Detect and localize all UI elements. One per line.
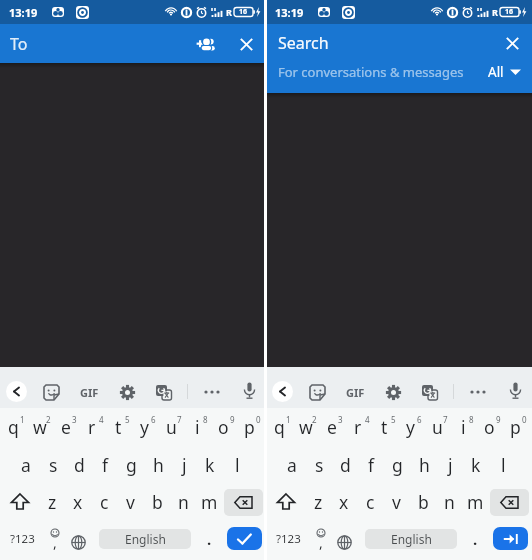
button[interactable]: z — [39, 485, 65, 519]
button[interactable]: c — [91, 485, 117, 519]
button[interactable] — [152, 381, 174, 403]
staticText: ?123 — [276, 531, 301, 547]
button[interactable] — [68, 532, 89, 553]
button[interactable] — [272, 381, 293, 402]
button[interactable]: v — [383, 485, 409, 519]
button[interactable]: b — [144, 485, 170, 519]
button[interactable]: n — [170, 485, 196, 519]
button[interactable]: f — [358, 448, 384, 482]
button[interactable]: x — [65, 485, 91, 519]
button[interactable] — [224, 489, 263, 516]
button[interactable]: To — [10, 33, 28, 55]
button[interactable]: l — [224, 448, 250, 482]
button[interactable] — [40, 381, 62, 403]
button[interactable] — [382, 381, 404, 403]
button[interactable]: d — [332, 448, 358, 482]
button[interactable] — [334, 532, 355, 553]
button[interactable]: English — [365, 529, 457, 549]
button[interactable]: e — [53, 410, 79, 444]
staticText: j — [182, 453, 187, 477]
button[interactable]: GIF — [342, 381, 368, 403]
button[interactable]: , — [44, 527, 64, 553]
button[interactable]: d — [66, 448, 92, 482]
staticText: o — [218, 415, 229, 439]
button[interactable] — [238, 380, 260, 402]
button[interactable]: m — [462, 485, 488, 519]
button[interactable]: ?123 — [272, 527, 304, 551]
button[interactable]: a — [13, 448, 39, 482]
button[interactable]: p — [236, 410, 262, 444]
button[interactable]: GIF — [76, 381, 102, 403]
button[interactable]: s — [306, 448, 332, 482]
staticText: f — [102, 453, 109, 477]
button[interactable] — [306, 381, 328, 403]
button[interactable]: t — [371, 410, 397, 444]
button[interactable]: i — [450, 410, 476, 444]
button[interactable]: r — [79, 410, 105, 444]
staticText: l — [501, 453, 506, 477]
button[interactable]: f — [92, 448, 118, 482]
button[interactable]: l — [490, 448, 516, 482]
button[interactable]: y — [131, 410, 157, 444]
button[interactable]: w — [27, 410, 53, 444]
button[interactable]: u — [424, 410, 450, 444]
staticText: k — [205, 453, 215, 477]
button[interactable]: o — [476, 410, 502, 444]
button[interactable]: e — [319, 410, 345, 444]
button[interactable] — [6, 488, 34, 516]
button[interactable] — [467, 381, 489, 403]
button[interactable]: i — [184, 410, 210, 444]
button[interactable]: q — [266, 410, 292, 444]
button[interactable]: j — [437, 448, 463, 482]
staticText: For conversations & messages — [278, 63, 464, 81]
button[interactable]: h — [411, 448, 437, 482]
button[interactable] — [6, 381, 27, 402]
button[interactable]: . — [200, 527, 218, 551]
button[interactable]: z — [305, 485, 331, 519]
button[interactable]: y — [397, 410, 423, 444]
button[interactable] — [418, 381, 440, 403]
button[interactable]: g — [384, 448, 410, 482]
button[interactable] — [227, 527, 262, 550]
button[interactable]: a — [279, 448, 305, 482]
button[interactable] — [493, 527, 528, 550]
button[interactable]: c — [357, 485, 383, 519]
button[interactable] — [201, 381, 223, 403]
button[interactable] — [499, 30, 525, 56]
button[interactable]: p — [502, 410, 528, 444]
staticText: r — [354, 415, 362, 439]
button[interactable]: h — [145, 448, 171, 482]
staticText: 0 — [522, 414, 527, 425]
button[interactable]: , — [310, 527, 330, 553]
staticText: o — [484, 415, 495, 439]
staticText: v — [392, 490, 401, 514]
button[interactable]: s — [40, 448, 66, 482]
button[interactable]: g — [118, 448, 144, 482]
button[interactable]: m — [196, 485, 222, 519]
button[interactable]: j — [171, 448, 197, 482]
button[interactable]: v — [117, 485, 143, 519]
staticText: u — [166, 415, 177, 439]
button[interactable] — [233, 31, 259, 57]
button[interactable] — [490, 489, 529, 516]
button[interactable]: u — [158, 410, 184, 444]
button[interactable]: r — [345, 410, 371, 444]
staticText: m — [467, 490, 484, 514]
button[interactable]: o — [210, 410, 236, 444]
button[interactable]: b — [410, 485, 436, 519]
button[interactable] — [272, 488, 300, 516]
button[interactable] — [191, 29, 221, 59]
button[interactable]: t — [105, 410, 131, 444]
button[interactable]: All — [488, 63, 521, 81]
button[interactable]: k — [197, 448, 223, 482]
button[interactable]: n — [436, 485, 462, 519]
button[interactable]: ?123 — [6, 527, 38, 551]
button[interactable]: x — [331, 485, 357, 519]
button[interactable]: . — [466, 527, 484, 551]
button[interactable]: w — [293, 410, 319, 444]
button[interactable]: English — [99, 529, 191, 549]
button[interactable]: q — [0, 410, 26, 444]
button[interactable]: k — [463, 448, 489, 482]
button[interactable] — [116, 381, 138, 403]
button[interactable] — [504, 380, 526, 402]
